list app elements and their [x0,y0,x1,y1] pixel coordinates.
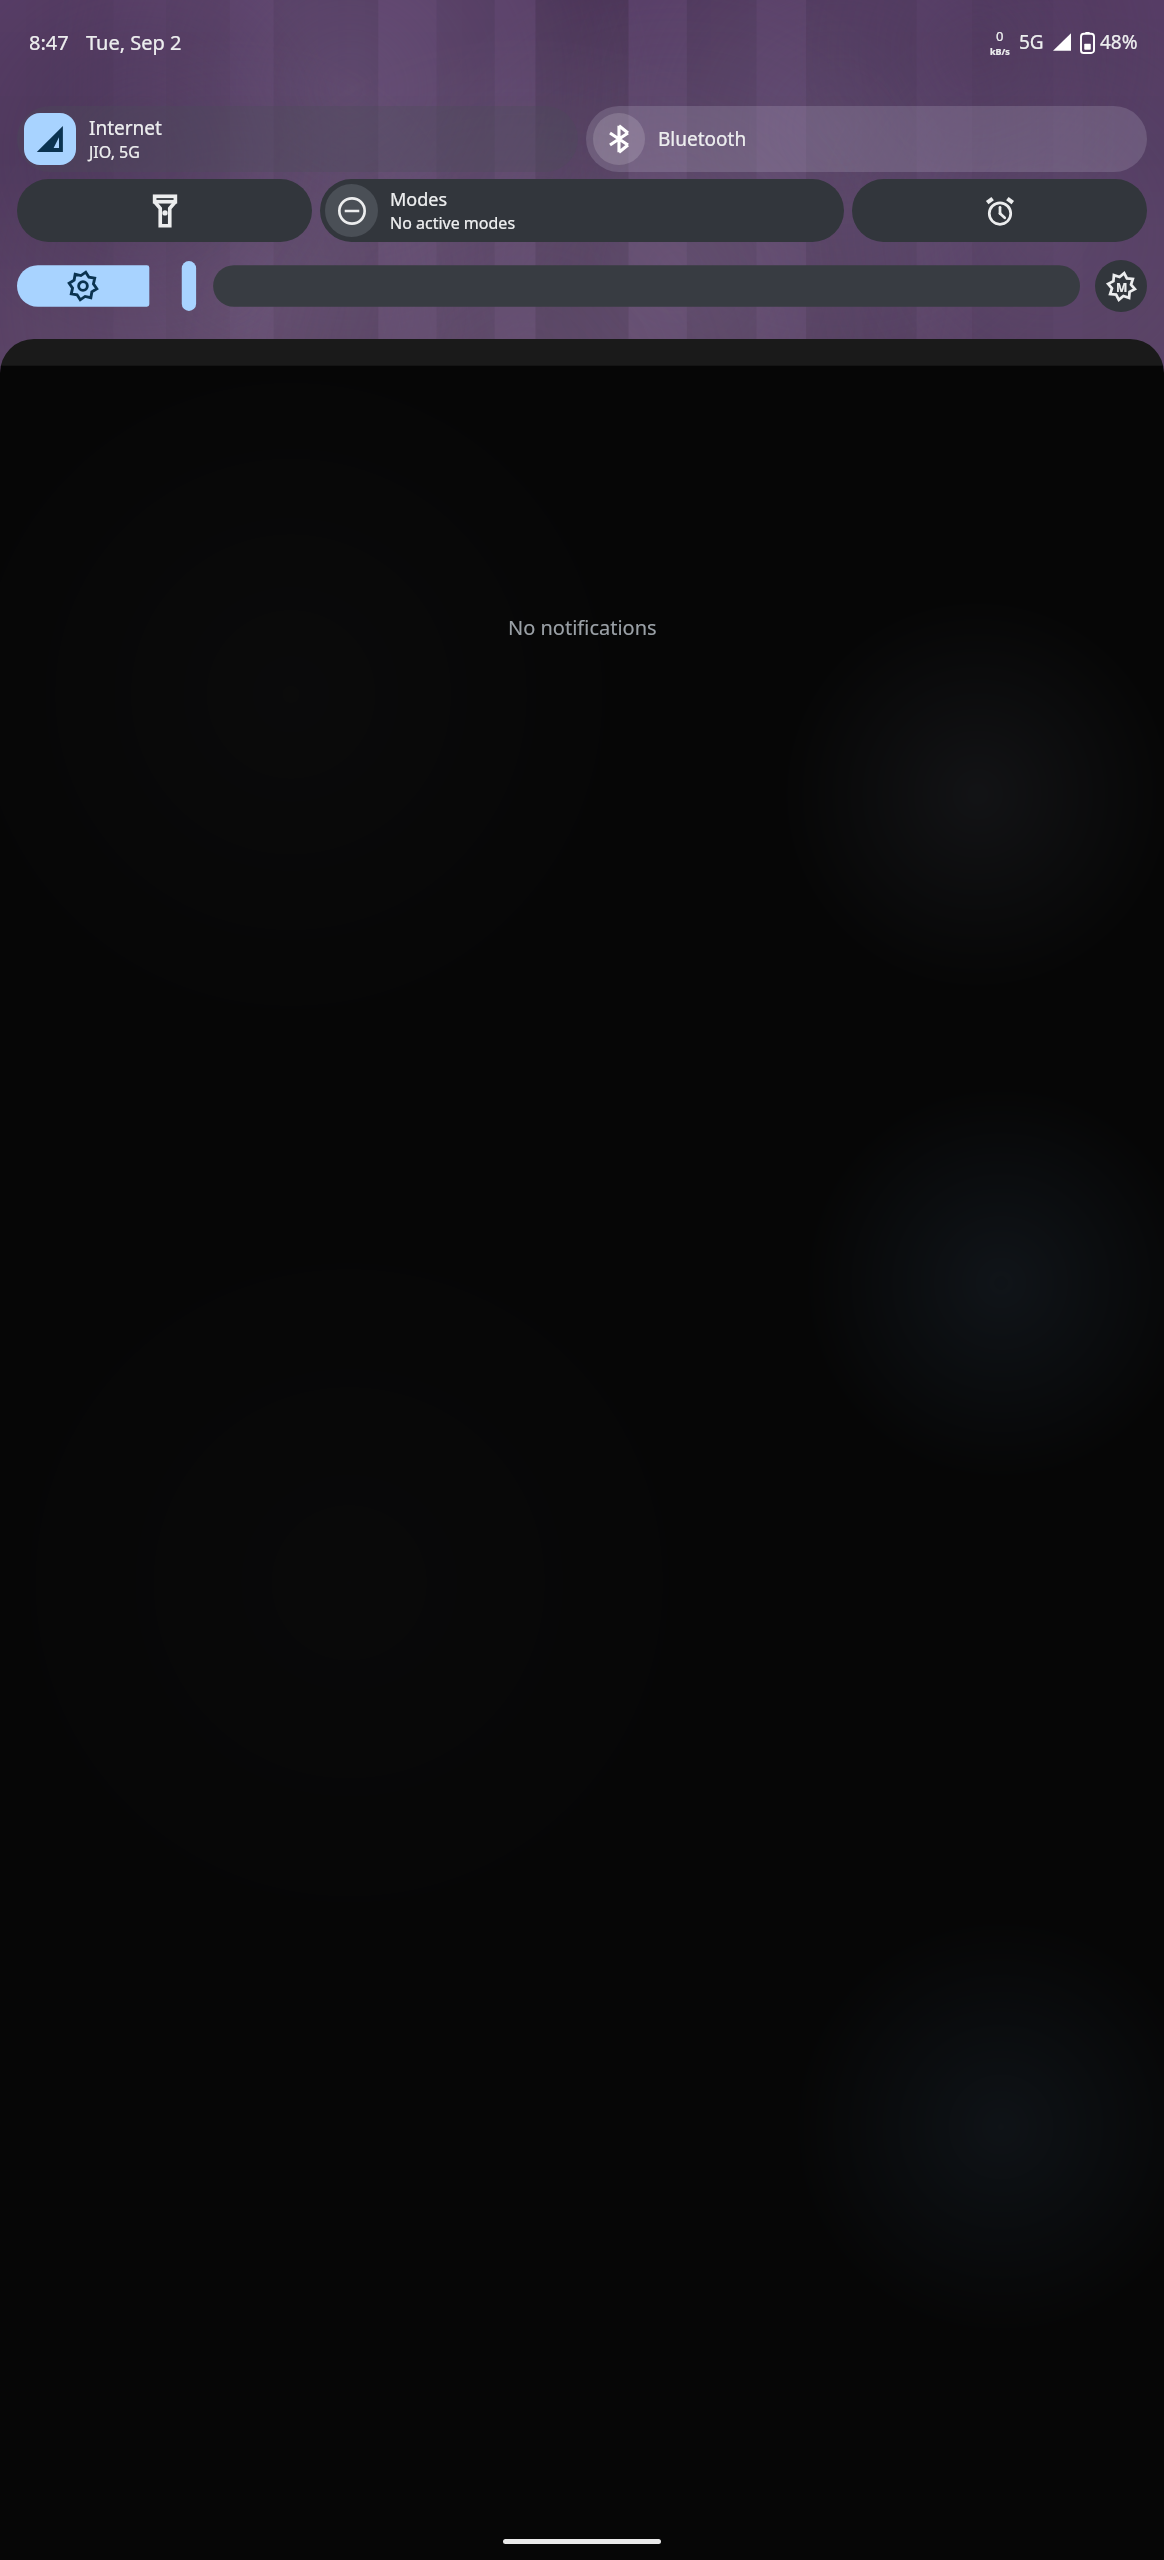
staticText: Bluetooth [658,126,747,152]
staticText: 5G [1019,29,1044,55]
button[interactable]: Alarm [852,179,1147,242]
staticText: 48% [1100,29,1138,55]
staticText: No notifications [508,614,657,641]
staticText: 8:47 [29,29,69,56]
staticText: kB/s [990,45,1010,57]
button[interactable]: Internet [17,106,578,172]
staticText: Internet [89,115,162,141]
staticText: Tue, Sep 2 [86,29,182,56]
staticText: Modes [390,187,448,212]
button[interactable]: Brightness [17,260,1080,312]
button[interactable]: Flashlight [17,179,312,242]
staticText: No active modes [390,212,516,234]
staticText: 0 [996,27,1004,45]
staticText: M [1116,279,1128,295]
button[interactable]: Modes [320,179,844,242]
button[interactable]: Bluetooth [586,106,1147,172]
staticText: JIO, 5G [89,141,140,163]
button[interactable]: Auto brightness [1095,260,1147,312]
